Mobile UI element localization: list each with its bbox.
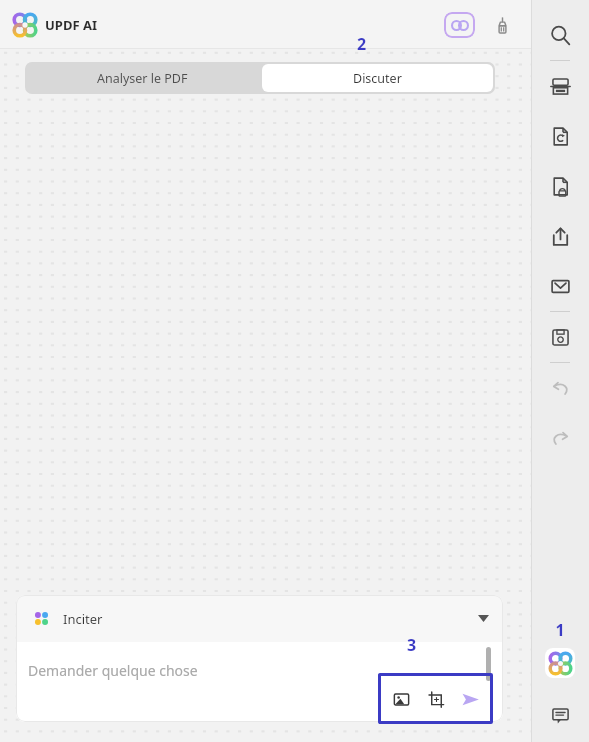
- button[interactable]: Share: [531, 211, 589, 261]
- staticText: 3: [407, 634, 417, 656]
- staticText: Analyser le PDF: [97, 70, 188, 87]
- staticText: UPDF AI: [45, 16, 97, 34]
- button[interactable]: Discuter: [262, 64, 493, 92]
- button[interactable]: Inciter: [16, 595, 503, 642]
- button[interactable]: Clear: [489, 12, 515, 38]
- button[interactable]: Demander quelque chose: [16, 642, 503, 722]
- button[interactable]: Undo: [531, 363, 589, 413]
- button[interactable]: Attach image: [386, 684, 416, 714]
- button[interactable]: Search: [531, 10, 589, 60]
- button[interactable]: Send: [455, 684, 485, 714]
- button[interactable]: Save: [531, 312, 589, 362]
- button[interactable]: Redo: [531, 413, 589, 463]
- button[interactable]: UPDF AI: [545, 648, 575, 678]
- button[interactable]: Snapshot area: [421, 684, 451, 714]
- staticText: 2: [357, 33, 367, 55]
- staticText: Discuter: [353, 70, 402, 87]
- button[interactable]: Email: [531, 261, 589, 311]
- button[interactable]: Convert: [531, 111, 589, 161]
- button[interactable]: OCR: [531, 61, 589, 111]
- button[interactable]: Comments: [543, 698, 577, 732]
- staticText: 1: [555, 619, 565, 641]
- staticText: Inciter: [63, 610, 103, 628]
- button[interactable]: Unlimited credits: [444, 12, 475, 38]
- staticText: Demander quelque chose: [28, 661, 198, 680]
- button[interactable]: Protect: [531, 161, 589, 211]
- button[interactable]: Analyser le PDF: [25, 62, 260, 94]
